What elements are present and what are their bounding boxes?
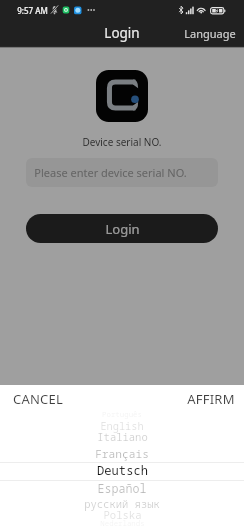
staticText: Deutsch [97, 462, 148, 478]
staticText: CANCEL [13, 390, 63, 408]
staticText: Español [97, 480, 147, 496]
staticText: Please enter device serial NO. [34, 165, 187, 180]
staticText: English [100, 419, 144, 433]
button[interactable]: English [0, 418, 244, 434]
staticText: Login [104, 24, 140, 42]
button[interactable]: Please enter device serial NO. [26, 158, 218, 187]
staticText: Login [105, 220, 140, 238]
staticText: Nederlands [100, 518, 145, 528]
button[interactable]: Language [184, 26, 236, 41]
staticText: Français [95, 446, 149, 461]
button[interactable]: Français [0, 445, 244, 461]
button[interactable]: AFFIRM [187, 390, 235, 408]
staticText: Polska [103, 508, 142, 522]
button[interactable]: CANCEL [13, 390, 63, 408]
staticText: Italiano [97, 430, 148, 444]
staticText: AFFIRM [187, 390, 235, 408]
staticText: русский язык [84, 497, 160, 511]
staticText: Language [184, 26, 236, 41]
button[interactable]: Deutsch [0, 462, 244, 478]
staticText: Device serial NO. [82, 135, 162, 149]
button[interactable]: Italiano [0, 429, 244, 445]
staticText: 9:57 AM [17, 5, 48, 16]
button[interactable]: Polska [0, 507, 244, 523]
button[interactable]: Login [26, 214, 218, 243]
button[interactable]: Español [0, 480, 244, 496]
button[interactable]: русский язык [0, 496, 244, 512]
